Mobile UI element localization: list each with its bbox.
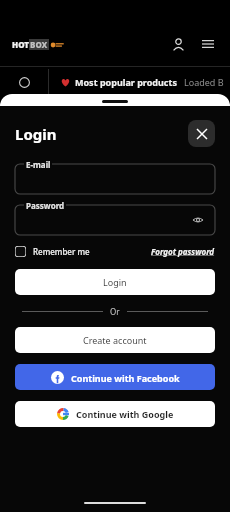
staticText: Forgot password: [151, 246, 215, 257]
button[interactable]: Password: [15, 205, 215, 235]
button[interactable]: E-mail: [15, 164, 215, 194]
staticText: BOX: [30, 39, 48, 50]
staticText: HOT: [12, 39, 29, 50]
staticText: Loaded B: [184, 76, 224, 88]
staticText: Create account: [83, 334, 147, 346]
staticText: Password: [26, 200, 65, 211]
button[interactable]: Continue with Google: [15, 401, 215, 427]
staticText: Remember me: [33, 246, 90, 257]
button[interactable]: Login: [15, 269, 215, 295]
staticText: Most popular products: [75, 76, 177, 88]
staticText: Continue with Facebook: [71, 372, 180, 384]
button[interactable]: Account: [168, 34, 188, 54]
button[interactable]: Menu: [198, 34, 218, 54]
button[interactable]: Continue with Facebook: [15, 364, 215, 390]
button[interactable]: Create account: [15, 327, 215, 353]
button[interactable]: Show password: [191, 213, 205, 227]
button[interactable]: Remember me: [15, 246, 94, 257]
staticText: Login: [103, 276, 127, 288]
staticText: Continue with Google: [76, 408, 174, 420]
staticText: E-mail: [26, 159, 51, 170]
button[interactable]: Forgot password: [151, 246, 215, 257]
button[interactable]: Close: [188, 120, 215, 147]
staticText: Login: [15, 124, 57, 144]
staticText: Or: [110, 306, 120, 317]
